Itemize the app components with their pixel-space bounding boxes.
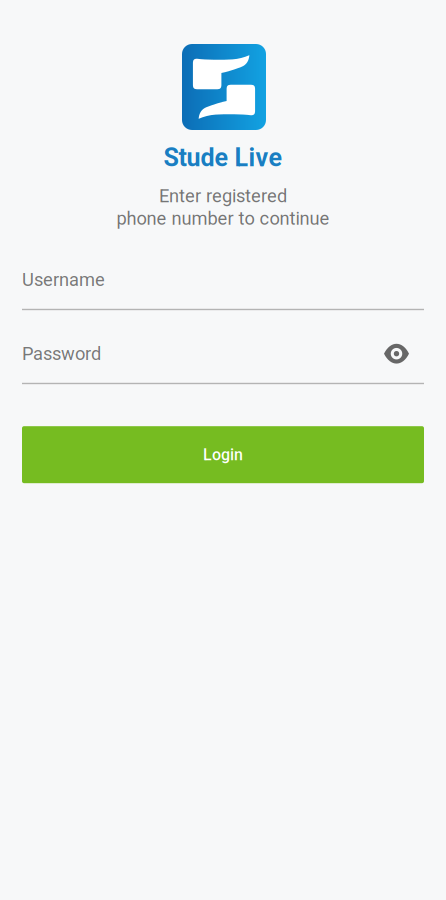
staticText: Username <box>22 269 105 290</box>
button[interactable]: Username <box>22 269 424 310</box>
button[interactable]: Show password <box>376 336 424 372</box>
staticText: Login <box>203 445 243 464</box>
staticText: phone number to continue <box>116 208 329 229</box>
staticText: Stude Live <box>163 143 282 172</box>
button[interactable]: Login <box>22 426 424 483</box>
button[interactable]: Password <box>22 343 424 384</box>
staticText: Enter registered <box>159 185 287 207</box>
staticText: Password <box>22 343 101 364</box>
